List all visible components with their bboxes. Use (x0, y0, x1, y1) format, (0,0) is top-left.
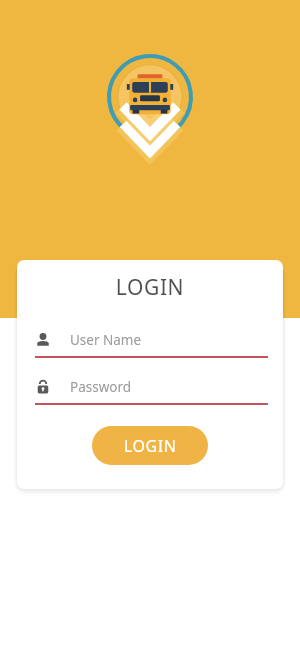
staticText: Password (70, 378, 132, 396)
staticText: LOGIN (17, 273, 283, 302)
other: User name (35, 332, 51, 348)
staticText: LOGIN (124, 435, 177, 457)
other: Password (35, 379, 51, 395)
button[interactable]: LOGIN (92, 426, 208, 465)
button[interactable]: User name (17, 331, 283, 358)
button[interactable]: Password (17, 378, 283, 405)
staticText: User Name (70, 331, 142, 349)
